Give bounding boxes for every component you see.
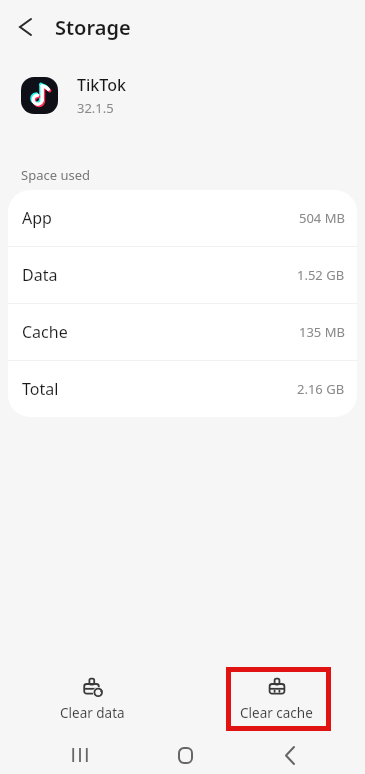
staticText: Clear data <box>60 704 125 722</box>
button[interactable] <box>272 737 308 773</box>
staticText: 2.16 GB <box>297 380 345 398</box>
button[interactable] <box>167 737 203 773</box>
staticText: App <box>22 207 52 229</box>
staticText: Cache <box>22 321 68 343</box>
staticText: 32.1.5 <box>77 99 114 117</box>
button[interactable]: App <box>8 190 357 246</box>
staticText: 135 MB <box>299 323 345 341</box>
staticText: Data <box>22 264 58 286</box>
button[interactable]: Clear data <box>32 672 152 726</box>
staticText: Space used <box>21 166 90 184</box>
button[interactable]: Data <box>8 247 357 303</box>
staticText: 1.52 GB <box>297 266 345 284</box>
staticText: 504 MB <box>299 209 345 227</box>
staticText: Clear cache <box>240 704 313 722</box>
button[interactable] <box>7 9 43 45</box>
button[interactable]: Total <box>8 361 357 417</box>
staticText: Total <box>22 378 59 400</box>
button[interactable] <box>62 737 98 773</box>
button[interactable]: Clear cache <box>216 672 336 726</box>
staticText: Storage <box>55 14 131 41</box>
button[interactable]: Cache <box>8 304 357 360</box>
staticText: TikTok <box>77 74 126 96</box>
